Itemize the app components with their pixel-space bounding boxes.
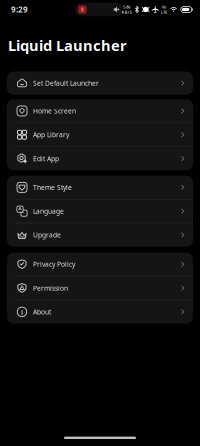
staticText: KB/S: [122, 9, 132, 15]
staticText: Privacy Policy: [33, 260, 75, 269]
button[interactable]: Upgrade: [7, 223, 193, 247]
button[interactable]: Edit App: [7, 147, 193, 170]
button[interactable]: Privacy Policy: [7, 253, 193, 276]
staticText: Set Default Launcher: [33, 79, 99, 88]
button[interactable]: App Library: [7, 123, 193, 146]
button[interactable]: Set Default Launcher: [7, 71, 193, 95]
staticText: Upgrade: [33, 230, 61, 239]
staticText: Permission: [33, 284, 68, 292]
button[interactable]: i: [7, 300, 193, 323]
staticText: Language: [33, 207, 64, 216]
staticText: Theme Style: [33, 183, 72, 192]
staticText: Edit App: [33, 154, 59, 163]
button[interactable]: Permission: [7, 276, 193, 300]
staticText: 9:29: [11, 4, 28, 15]
staticText: About: [33, 307, 51, 316]
staticText: Liquid Launcher: [8, 35, 127, 55]
staticText: i: [21, 306, 23, 317]
staticText: Vo: [162, 4, 166, 9]
button[interactable]: Theme Style: [7, 176, 193, 199]
button[interactable]: Home Screen: [7, 99, 193, 123]
staticText: 5.86: [123, 4, 130, 9]
staticText: Home Screen: [33, 106, 76, 115]
button[interactable]: Language: [7, 199, 193, 223]
staticText: LTE: [161, 9, 167, 15]
staticText: App Library: [33, 130, 69, 139]
